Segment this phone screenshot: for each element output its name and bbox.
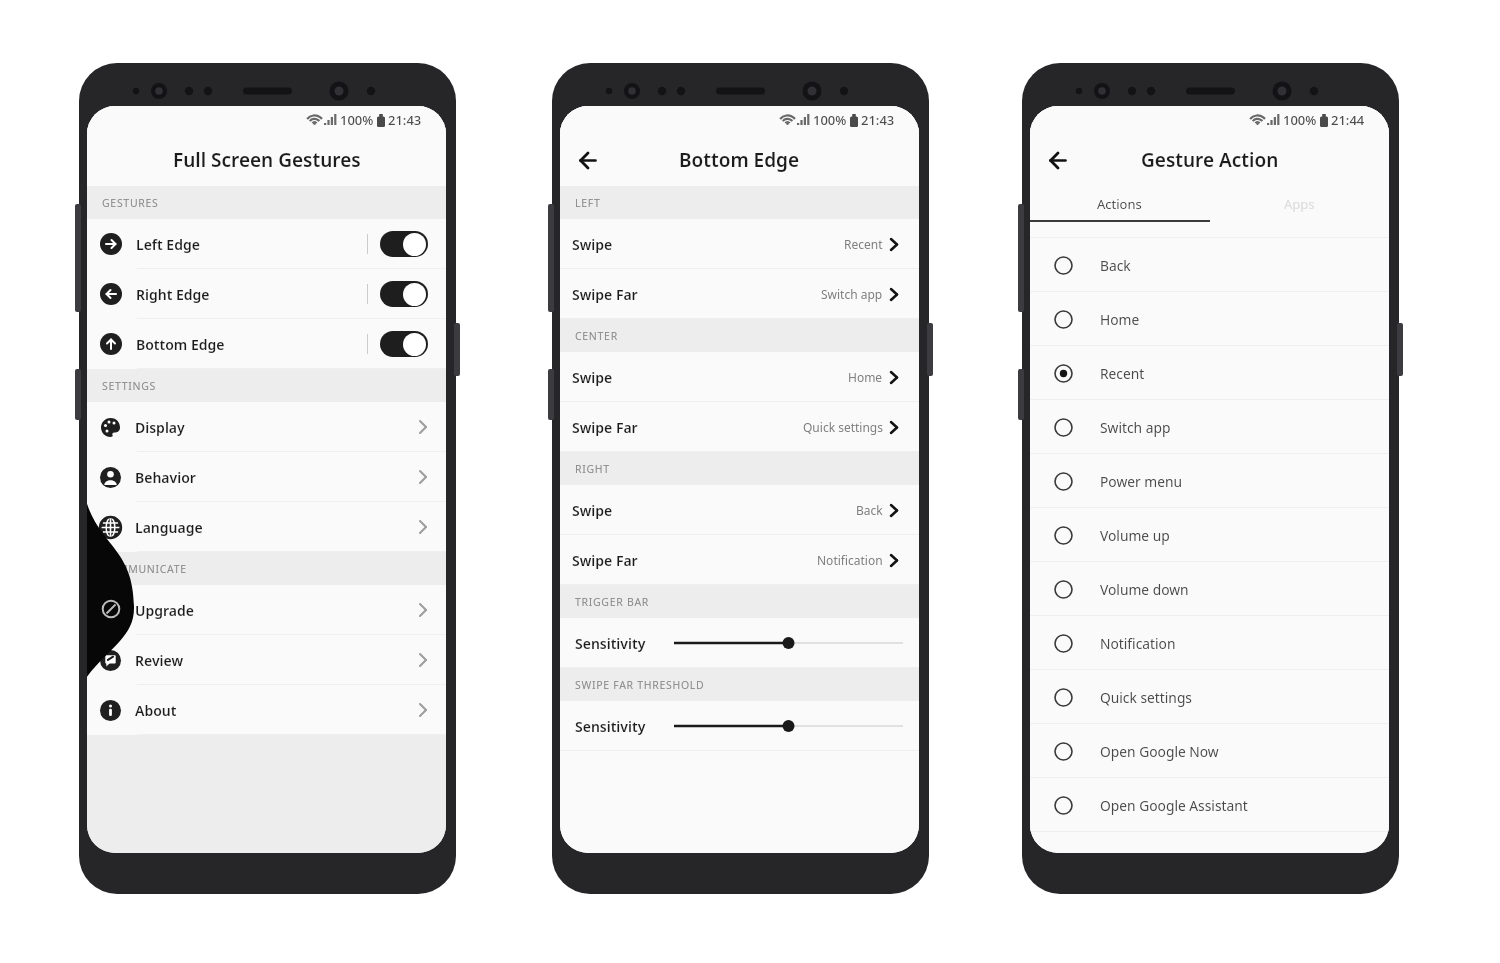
staticText: Right Edge (136, 285, 210, 304)
button[interactable]: Left Edge (87, 219, 446, 269)
staticText: Swipe (572, 501, 613, 520)
staticText: Left Edge (136, 235, 200, 254)
staticText: Full Screen Gestures (173, 147, 361, 173)
staticText: CENTER (575, 329, 618, 343)
staticText: Open Google Assistant (1100, 796, 1248, 815)
staticText: Volume up (1100, 526, 1170, 545)
staticText: 21:44 (1331, 111, 1365, 129)
button[interactable]: Swipe Far (560, 402, 919, 452)
staticText: Bottom Edge (136, 335, 225, 354)
staticText: Swipe (572, 368, 613, 387)
button[interactable]: Display (87, 402, 446, 452)
staticText: Language (135, 518, 203, 537)
staticText: Apps (1284, 195, 1315, 213)
button[interactable]: Toggle Bottom Edge (380, 331, 428, 357)
staticText: Notification (817, 552, 883, 568)
button[interactable]: Back (1030, 238, 1389, 292)
button[interactable]: Power menu (1030, 454, 1389, 508)
staticText: Swipe Far (572, 551, 638, 570)
staticText: Open Google Now (1100, 742, 1219, 761)
staticText: 100% (340, 111, 374, 129)
staticText: Sensitivity (575, 634, 646, 653)
button[interactable]: Behavior (87, 452, 446, 502)
staticText: Swipe Far (572, 285, 638, 304)
staticText: GESTURES (102, 196, 159, 210)
staticText: COMMUNICATE (102, 562, 187, 576)
button[interactable]: Swipe (560, 219, 919, 269)
button[interactable]: Upgrade (87, 585, 446, 635)
button[interactable]: Swipe (560, 485, 919, 535)
staticText: Notification (1100, 634, 1176, 653)
staticText: Switch app (1100, 418, 1171, 437)
staticText: 100% (813, 111, 847, 129)
button[interactable]: Switch app (1030, 400, 1389, 454)
button[interactable]: Sensitivity slider (674, 633, 903, 653)
staticText: Review (135, 651, 184, 670)
button[interactable]: Notification (1030, 616, 1389, 670)
staticText: Home (848, 369, 883, 385)
staticText: Swipe (572, 235, 613, 254)
staticText: SETTINGS (102, 379, 157, 393)
staticText: SWIPE FAR THRESHOLD (575, 678, 705, 692)
staticText: Back (1100, 256, 1131, 275)
staticText: Quick settings (1100, 688, 1192, 707)
staticText: 21:43 (861, 111, 895, 129)
button[interactable]: Review (87, 635, 446, 685)
staticText: Home (1100, 310, 1140, 329)
staticText: Bottom Edge (679, 147, 800, 173)
staticText: Switch app (821, 286, 883, 302)
staticText: RIGHT (575, 462, 610, 476)
staticText: Quick settings (803, 419, 883, 435)
staticText: Behavior (135, 468, 196, 487)
button[interactable]: Right Edge (87, 269, 446, 319)
staticText: Actions (1097, 195, 1142, 213)
button[interactable]: Swipe Far (560, 269, 919, 319)
staticText: Sensitivity (575, 717, 646, 736)
staticText: Recent (1100, 364, 1145, 383)
staticText: Back (856, 502, 883, 518)
button[interactable]: Volume down (1030, 562, 1389, 616)
button[interactable]: Toggle Right Edge (380, 281, 428, 307)
staticText: Recent (844, 236, 883, 252)
button[interactable]: Apps (1209, 186, 1389, 222)
staticText: Upgrade (135, 601, 194, 620)
staticText: 21:43 (388, 111, 422, 129)
button[interactable]: Bottom Edge (87, 319, 446, 369)
button[interactable]: Back (570, 143, 604, 177)
button[interactable]: Swipe (560, 352, 919, 402)
button[interactable]: Quick settings (1030, 670, 1389, 724)
staticText: LEFT (575, 196, 601, 210)
button[interactable]: Actions (1030, 186, 1209, 222)
staticText: Swipe Far (572, 418, 638, 437)
button[interactable]: Open Google Assistant (1030, 778, 1389, 832)
button[interactable]: Toggle Left Edge (380, 231, 428, 257)
button[interactable]: Language (87, 502, 446, 552)
staticText: 100% (1283, 111, 1317, 129)
button[interactable]: About (87, 685, 446, 735)
staticText: Gesture Action (1141, 147, 1279, 173)
button[interactable]: Volume up (1030, 508, 1389, 562)
button[interactable]: Open Google Now (1030, 724, 1389, 778)
button[interactable]: Back (1040, 143, 1074, 177)
button[interactable]: Recent (1030, 346, 1389, 400)
button[interactable]: Swipe Far (560, 535, 919, 585)
staticText: TRIGGER BAR (575, 595, 650, 609)
staticText: Volume down (1100, 580, 1189, 599)
button[interactable]: Home (1030, 292, 1389, 346)
staticText: Display (135, 418, 185, 437)
staticText: About (135, 701, 177, 720)
staticText: Power menu (1100, 472, 1183, 491)
button[interactable]: Sensitivity slider (674, 716, 903, 736)
